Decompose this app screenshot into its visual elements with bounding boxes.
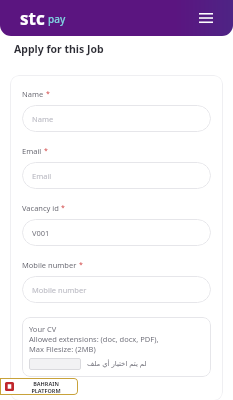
- staticText: Mobile number: [32, 285, 87, 295]
- button[interactable]: Your CV: [22, 317, 211, 377]
- staticText: Apply for this Job: [14, 42, 104, 56]
- button[interactable]: Name: [22, 105, 211, 132]
- staticText: Your CV: [29, 324, 57, 334]
- button[interactable]: stc: [20, 7, 66, 30]
- button[interactable]: BAHRAIN PLATFORM: [0, 378, 78, 395]
- staticText: *: [46, 89, 50, 99]
- staticText: Vacancy id: [22, 203, 59, 213]
- staticText: V001: [32, 228, 50, 238]
- staticText: Allowed extensions: (doc, docx, PDF),: [29, 334, 159, 344]
- button[interactable]: Menu: [195, 7, 217, 29]
- staticText: Email: [32, 171, 52, 181]
- staticText: *: [79, 260, 83, 270]
- button[interactable]: Choose file: [29, 358, 81, 370]
- staticText: *: [44, 146, 48, 156]
- staticText: pay: [48, 12, 66, 26]
- button[interactable]: Email: [22, 162, 211, 189]
- staticText: Name: [32, 114, 54, 124]
- button[interactable]: Mobile number: [22, 276, 211, 303]
- staticText: Mobile number: [22, 260, 77, 270]
- staticText: BAHRAIN PLATFORM: [18, 380, 74, 394]
- staticText: Max Filesize: (2MB): [29, 344, 96, 354]
- staticText: Name: [22, 89, 44, 99]
- staticText: لم يتم اختيار أي ملف: [87, 359, 147, 369]
- staticText: *: [61, 203, 65, 213]
- staticText: stc: [20, 7, 45, 30]
- button[interactable]: V001: [22, 219, 211, 246]
- staticText: Email: [22, 146, 42, 156]
